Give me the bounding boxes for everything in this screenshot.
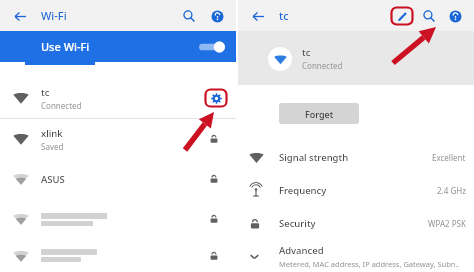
button[interactable]: Security bbox=[238, 207, 474, 240]
staticText: Connected bbox=[41, 100, 82, 111]
button[interactable]: Help bbox=[444, 5, 466, 27]
button[interactable]: Network settings bbox=[204, 88, 228, 108]
button[interactable]: xlink bbox=[0, 119, 236, 159]
staticText: tc bbox=[302, 46, 311, 59]
button[interactable]: Secured network bbox=[0, 199, 236, 239]
staticText: Connected bbox=[302, 60, 343, 71]
button[interactable]: Search bbox=[418, 5, 440, 27]
button[interactable]: Secured network bbox=[206, 248, 222, 264]
staticText: Metered, MAC address, IP address, Gatewa… bbox=[279, 259, 460, 269]
button[interactable]: Secured network bbox=[206, 131, 222, 147]
button[interactable]: Secured network bbox=[0, 239, 236, 272]
button[interactable]: Secured network bbox=[206, 171, 222, 187]
staticText: Advanced bbox=[279, 244, 324, 257]
button[interactable]: Advanced bbox=[238, 240, 474, 272]
button[interactable]: Secured network bbox=[206, 211, 222, 227]
button[interactable]: Help bbox=[206, 5, 228, 27]
staticText: tc bbox=[279, 8, 289, 23]
button[interactable]: Use Wi-Fi bbox=[0, 31, 236, 62]
button[interactable]: Forget bbox=[279, 103, 359, 124]
staticText: Use Wi-Fi bbox=[41, 39, 90, 54]
staticText: Wi-Fi bbox=[41, 8, 67, 23]
staticText: Frequency bbox=[279, 184, 327, 197]
staticText: Signal strength bbox=[279, 151, 349, 164]
button[interactable]: ASUS bbox=[0, 159, 236, 199]
button[interactable]: tc bbox=[0, 78, 236, 118]
staticText: Security bbox=[279, 217, 316, 230]
button[interactable]: Edit bbox=[389, 5, 415, 27]
staticText: Saved bbox=[41, 141, 64, 152]
button[interactable]: Frequency bbox=[238, 174, 474, 207]
staticText: 2.4 GHz bbox=[437, 185, 466, 196]
staticText: WPA2 PSK bbox=[428, 218, 466, 229]
button[interactable]: Search bbox=[178, 5, 200, 27]
staticText: Excellent bbox=[432, 152, 466, 163]
button[interactable]: Back bbox=[9, 5, 31, 27]
button[interactable]: Back bbox=[247, 5, 269, 27]
staticText: Forget bbox=[305, 108, 334, 120]
button[interactable]: Signal strength bbox=[238, 141, 474, 174]
staticText: ASUS bbox=[41, 173, 65, 186]
staticText: xlink bbox=[41, 127, 63, 140]
staticText: tc bbox=[41, 86, 50, 99]
